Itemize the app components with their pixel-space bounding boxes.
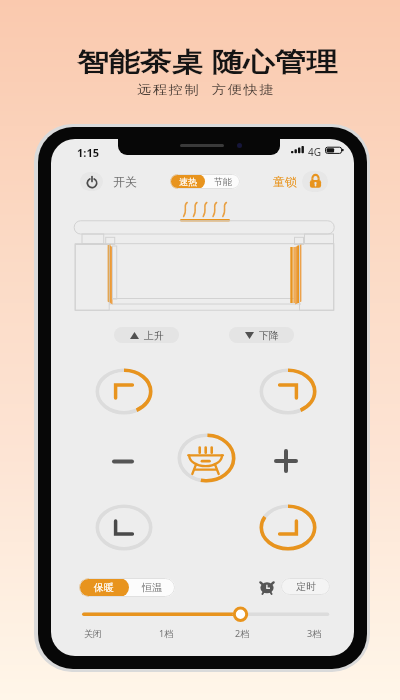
button[interactable]: 保暖	[79, 578, 129, 597]
button[interactable]: 节能	[205, 174, 240, 189]
button[interactable]: Top left zone	[95, 368, 153, 415]
button[interactable]: 开关	[80, 170, 137, 192]
button[interactable]: Grill power	[177, 433, 236, 483]
staticText: 3档	[307, 627, 322, 639]
button[interactable]: Bottom left zone	[95, 504, 153, 551]
button[interactable]: 童锁	[273, 170, 328, 192]
staticText: 2档	[235, 627, 250, 639]
button[interactable]: Decrease temperature	[106, 448, 140, 474]
staticText: 童锁	[273, 174, 297, 189]
staticText: 定时	[296, 580, 316, 593]
staticText: 恒温	[142, 581, 162, 594]
button[interactable]: 定时	[281, 578, 330, 595]
staticText: 上升	[144, 329, 164, 342]
staticText: 下降	[259, 329, 279, 342]
button[interactable]: Increase temperature	[269, 444, 303, 478]
staticText: 4G	[308, 145, 321, 159]
button[interactable]: 上升	[114, 327, 179, 343]
staticText: 远程控制 方便快捷	[137, 81, 276, 98]
button[interactable]: Alarm	[257, 577, 277, 597]
staticText: 开关	[113, 174, 137, 189]
button[interactable]: Top right zone	[259, 368, 317, 415]
staticText: 关闭	[84, 628, 102, 639]
button[interactable]: Bottom right zone	[259, 504, 317, 551]
staticText: 保暖	[94, 581, 114, 594]
staticText: 1:15	[77, 145, 99, 160]
button[interactable]: 速热	[170, 174, 205, 189]
staticText: 速热	[179, 176, 197, 187]
staticText: 节能	[214, 176, 232, 187]
button[interactable]: 恒温	[129, 578, 175, 597]
staticText: 1档	[159, 627, 174, 639]
button[interactable]: 下降	[229, 327, 294, 343]
staticText: 智能茶桌 随心管理	[77, 43, 338, 79]
